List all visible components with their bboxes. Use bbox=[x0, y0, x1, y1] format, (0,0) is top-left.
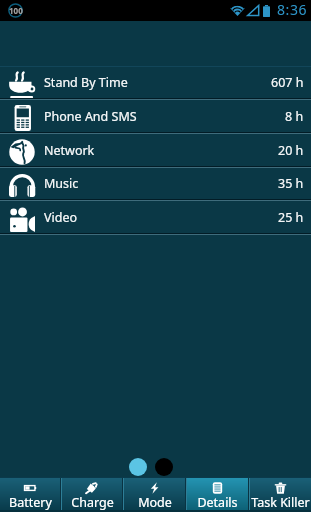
staticText: 8:36 bbox=[277, 0, 308, 19]
button[interactable]: Network bbox=[0, 134, 311, 168]
staticText: Details bbox=[197, 494, 238, 511]
staticText: Stand By Time bbox=[44, 74, 128, 91]
staticText: Task Killer bbox=[251, 494, 310, 511]
staticText: Network bbox=[44, 142, 95, 159]
button[interactable]: Video bbox=[0, 201, 311, 235]
staticText: 100 bbox=[9, 5, 23, 16]
button[interactable]: Details bbox=[187, 478, 248, 510]
button[interactable]: Phone And SMS bbox=[0, 100, 311, 134]
button[interactable]: Task Killer bbox=[250, 478, 311, 510]
button[interactable]: Mode bbox=[124, 478, 185, 510]
staticText: 8 h bbox=[285, 108, 304, 125]
staticText: 25 h bbox=[278, 209, 304, 226]
staticText: Phone And SMS bbox=[44, 108, 137, 125]
staticText: Video bbox=[44, 209, 78, 226]
staticText: Battery bbox=[9, 494, 52, 511]
button[interactable]: Music bbox=[0, 168, 311, 201]
button[interactable]: Stand By Time bbox=[0, 67, 311, 100]
button[interactable]: Charge bbox=[62, 478, 122, 510]
button[interactable]: Battery bbox=[0, 478, 60, 510]
staticText: 35 h bbox=[278, 175, 304, 192]
staticText: 607 h bbox=[271, 74, 304, 91]
staticText: Mode bbox=[138, 494, 172, 511]
staticText: Charge bbox=[71, 494, 114, 511]
staticText: 20 h bbox=[278, 142, 304, 159]
staticText: Music bbox=[44, 175, 79, 192]
